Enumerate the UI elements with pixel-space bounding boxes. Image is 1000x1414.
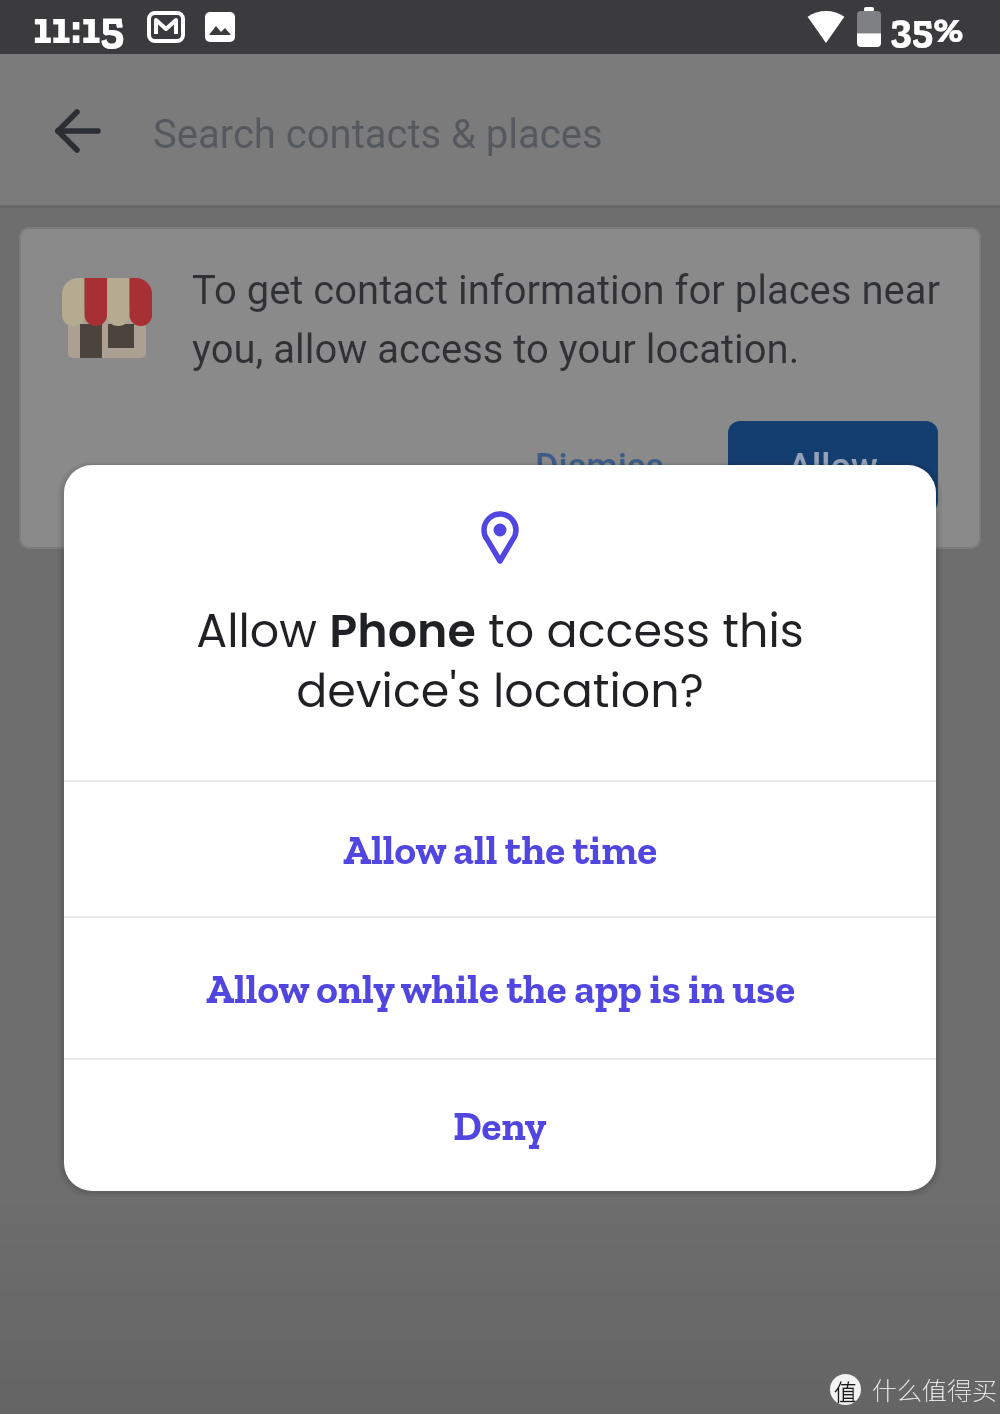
button[interactable]: Dismiss	[530, 425, 670, 509]
staticText: Allow only while the app is in use	[206, 964, 795, 1013]
staticText: 35%	[890, 3, 964, 52]
staticText: Dismiss	[535, 446, 665, 488]
button[interactable]: Allow only while the app is in use	[64, 918, 936, 1058]
staticText: Allow Phone to access this device's loca…	[196, 599, 804, 723]
staticText: 什么值得买	[872, 1371, 998, 1407]
staticText: 11:15	[33, 0, 125, 54]
button[interactable]: Allow	[728, 421, 938, 513]
button[interactable]: Allow all the time	[64, 782, 936, 916]
button[interactable]: Search contacts & places	[0, 54, 1000, 208]
staticText: Search contacts & places	[153, 111, 603, 158]
staticText: Allow	[788, 446, 878, 488]
staticText: Allow all the time	[343, 825, 658, 874]
staticText: Deny	[453, 1101, 547, 1150]
staticText: To get contact information for places ne…	[192, 267, 941, 372]
staticText: 值	[834, 1374, 857, 1405]
button[interactable]: Deny	[64, 1060, 936, 1191]
